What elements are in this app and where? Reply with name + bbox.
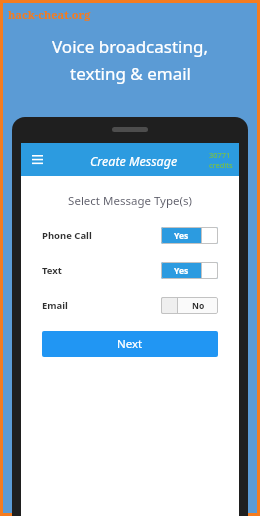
staticText: Voice broadcasting,: [52, 35, 208, 58]
staticText: Create Message: [90, 153, 178, 170]
staticText: credits: [209, 160, 233, 170]
button[interactable]: Text: [42, 261, 218, 279]
staticText: hack-cheat.org: [8, 7, 91, 22]
button[interactable]: 30771: [209, 150, 233, 170]
staticText: Select Message Type(s): [21, 193, 239, 209]
staticText: Email: [42, 299, 68, 312]
staticText: Text: [42, 264, 62, 277]
button[interactable]: Email: [42, 296, 218, 314]
button[interactable]: Phone Call: [42, 226, 218, 244]
staticText: texting & email: [70, 62, 191, 85]
staticText: Phone Call: [42, 229, 92, 242]
button[interactable]: Open navigation menu: [26, 149, 48, 171]
staticText: Next: [117, 336, 143, 352]
staticText: No: [192, 300, 205, 312]
button[interactable]: Next: [42, 331, 218, 357]
staticText: Yes: [174, 230, 189, 242]
staticText: Yes: [174, 265, 189, 277]
staticText: 30771: [209, 150, 231, 160]
